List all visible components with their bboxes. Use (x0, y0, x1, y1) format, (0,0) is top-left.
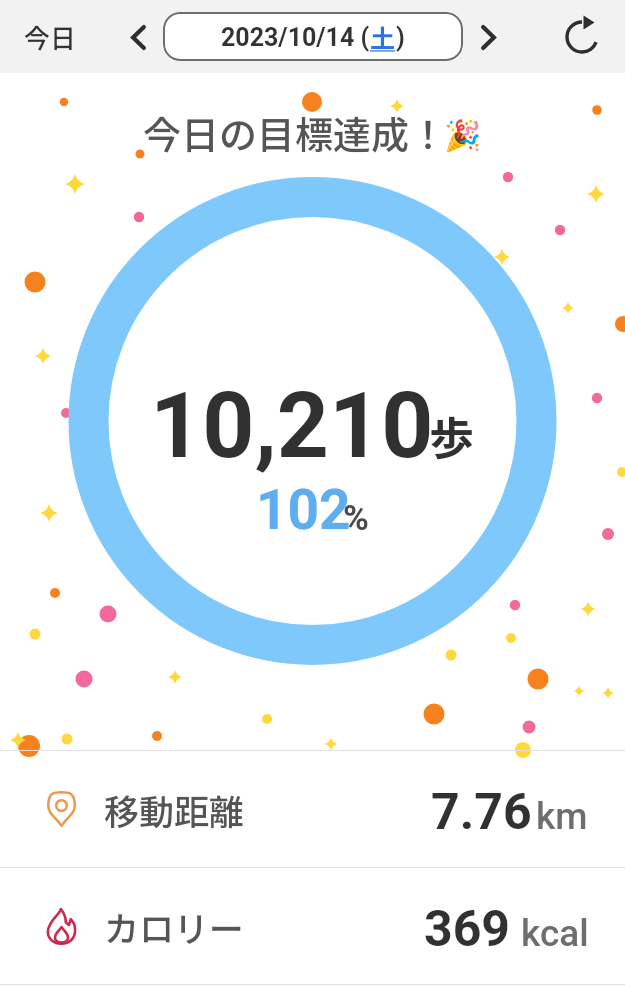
staticText: 2023/10/14 ( (221, 23, 370, 52)
staticText: 10,210 (150, 373, 434, 480)
staticText: % (343, 498, 369, 539)
button[interactable]: Next day (464, 13, 512, 61)
staticText: 🎉 (444, 118, 482, 153)
button[interactable]: カロリー (0, 868, 625, 984)
button[interactable]: 移動距離 (0, 751, 625, 867)
staticText: ) (396, 23, 405, 52)
button[interactable]: 今日 (18, 10, 83, 64)
staticText: 土 (370, 19, 396, 55)
staticText: 102 (256, 478, 351, 542)
staticText: 移動距離 (104, 784, 245, 835)
button[interactable]: Previous day (114, 13, 162, 61)
staticText: 369 (424, 900, 511, 959)
staticText: 歩 (429, 403, 475, 468)
staticText: 今日 (24, 18, 77, 56)
staticText: kcal (521, 912, 589, 955)
staticText: カロリー (104, 901, 245, 952)
staticText: km (536, 795, 588, 838)
staticText: 7.76 (431, 783, 532, 842)
button[interactable]: 2023/10/14 ( (163, 12, 463, 61)
staticText: 今日の目標達成！ (143, 105, 448, 160)
button[interactable]: Refresh (554, 9, 610, 65)
